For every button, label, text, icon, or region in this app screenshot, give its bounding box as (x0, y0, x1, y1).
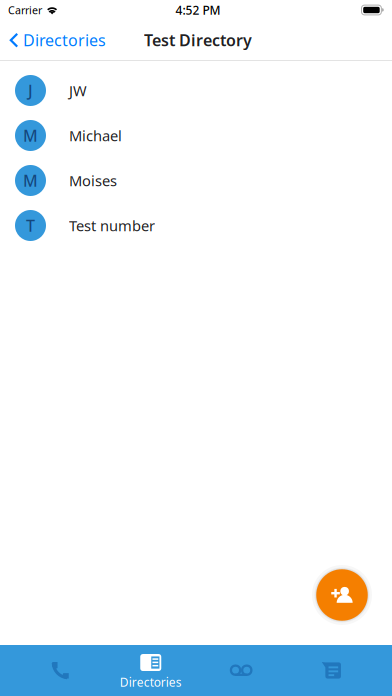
staticText: 4:52 PM (175, 2, 220, 18)
button[interactable]: T (0, 203, 392, 248)
staticText: Test number (69, 216, 155, 235)
button[interactable]: Directories (105, 645, 196, 696)
button[interactable]: Voicemail (196, 645, 286, 696)
staticText: M (23, 170, 38, 191)
staticText: Directories (23, 29, 106, 51)
staticText: Moises (69, 171, 117, 190)
staticText: Michael (69, 126, 122, 145)
button[interactable]: M (0, 158, 392, 203)
button[interactable]: J (0, 68, 392, 113)
staticText: Test Directory (144, 29, 252, 51)
button[interactable]: Add contact (312, 565, 372, 625)
button[interactable]: M (0, 113, 392, 158)
button[interactable]: Directories (0, 21, 114, 59)
staticText: Directories (120, 674, 182, 690)
staticText: Carrier (8, 3, 42, 17)
button[interactable]: Messages (286, 645, 377, 696)
staticText: T (26, 215, 35, 236)
button[interactable]: Keypad (15, 645, 105, 696)
staticText: J (28, 80, 33, 101)
staticText: M (23, 125, 38, 146)
staticText: JW (69, 81, 87, 100)
